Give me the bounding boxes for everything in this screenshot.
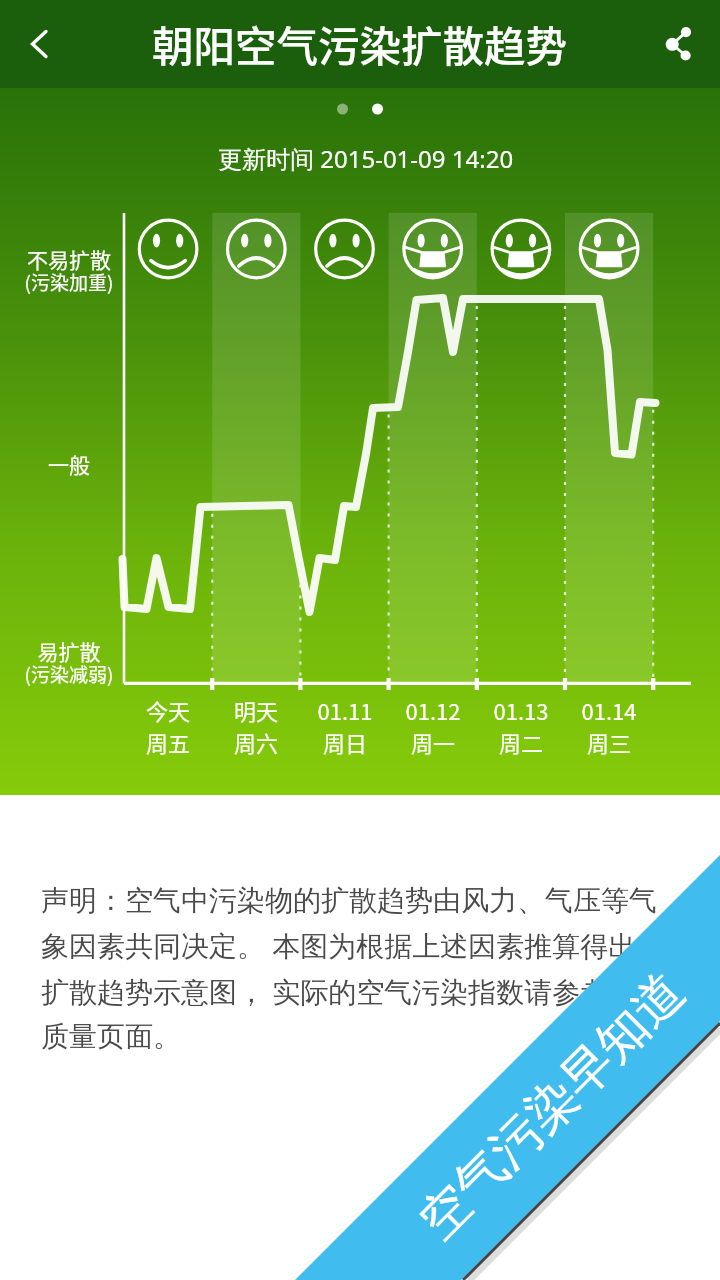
staticText: 易扩散: [0, 636, 138, 666]
staticText: 01.14: [564, 694, 654, 726]
staticText: 01.13: [476, 694, 566, 726]
button[interactable]: 空气污染早知道: [0, 0, 720, 1280]
button[interactable]: Back: [0, 0, 88, 88]
staticText: 不易扩散: [0, 244, 138, 274]
staticText: 01.11: [300, 694, 390, 726]
staticText: 01.12: [388, 694, 478, 726]
staticText: (污染加重): [0, 268, 138, 296]
staticText: 声明：空气中污染物的扩散趋势由风力、气压等气 象因素共同决定。 本图为根据上述因…: [41, 883, 665, 1054]
button[interactable]: Share: [632, 0, 720, 88]
staticText: 周一: [388, 726, 478, 758]
staticText: 明天: [211, 694, 301, 726]
staticText: 朝阳空气污染扩散趋势: [152, 14, 568, 74]
staticText: 周五: [123, 726, 213, 758]
staticText: 周二: [476, 726, 566, 758]
staticText: 更新时间 2015-01-09 14:20: [218, 142, 514, 175]
staticText: 周日: [300, 726, 390, 758]
staticText: 周六: [211, 726, 301, 758]
staticText: (污染减弱): [0, 660, 138, 688]
staticText: 一般: [0, 449, 138, 479]
staticText: 周三: [564, 726, 654, 758]
staticText: 今天: [123, 694, 213, 726]
